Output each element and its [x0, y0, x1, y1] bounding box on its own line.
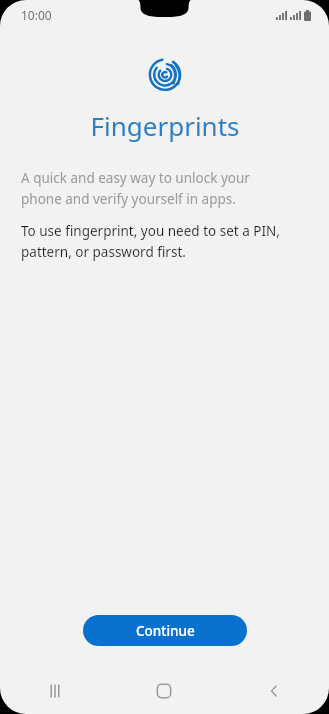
staticText: Continue	[136, 622, 195, 640]
button[interactable]: Continue	[83, 615, 247, 646]
button[interactable]: Home	[109, 668, 219, 714]
staticText: Fingerprints	[90, 108, 240, 143]
staticText: A quick and easy way to unlock your phon…	[21, 169, 250, 208]
staticText: 10:00	[21, 7, 52, 23]
staticText: To use fingerprint, you need to set a PI…	[21, 222, 280, 261]
button[interactable]: Back	[219, 668, 329, 714]
button[interactable]: Recents	[0, 668, 109, 714]
